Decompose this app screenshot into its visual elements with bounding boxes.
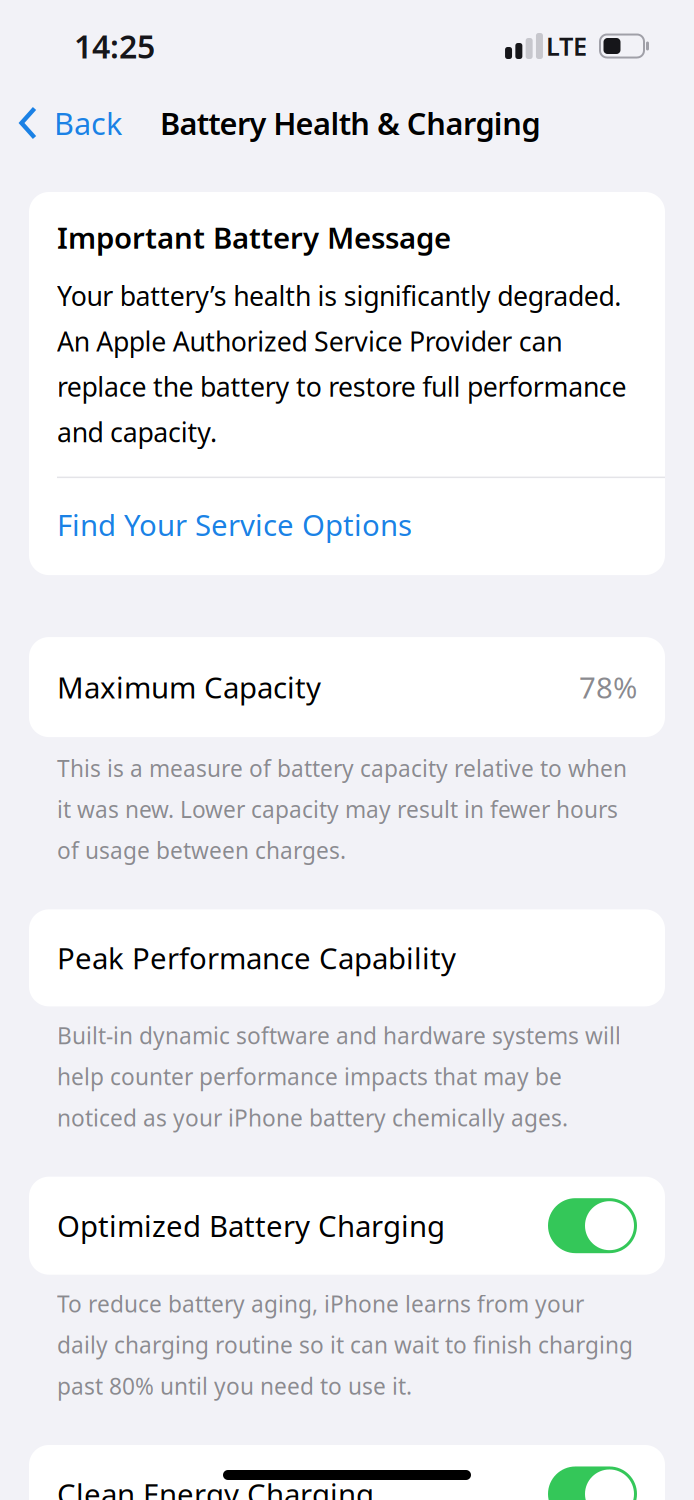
staticText: This is a measure of battery capacity re…: [57, 753, 627, 865]
button[interactable]: Find Your Service Options: [57, 478, 637, 575]
button[interactable]: Back: [0, 88, 132, 158]
staticText: Important Battery Message: [57, 218, 451, 257]
staticText: 78%: [579, 668, 637, 707]
staticText: Maximum Capacity: [57, 668, 321, 707]
staticText: Back: [54, 103, 122, 143]
staticText: Peak Performance Capability: [57, 938, 456, 977]
staticText: Your battery’s health is significantly d…: [57, 278, 626, 450]
button[interactable]: Optimized Battery Charging: [29, 1177, 665, 1275]
staticText: Built-in dynamic software and hardware s…: [57, 1020, 621, 1133]
button[interactable]: Maximum Capacity: [29, 637, 665, 737]
staticText: LTE: [546, 29, 587, 63]
staticText: Battery Health & Charging: [160, 103, 541, 143]
staticText: Optimized Battery Charging: [57, 1206, 445, 1245]
staticText: 14:25: [74, 25, 155, 67]
button[interactable]: Peak Performance Capability: [29, 909, 665, 1006]
button[interactable]: Clean Energy Charging: [29, 1445, 665, 1500]
staticText: Find Your Service Options: [57, 505, 412, 544]
staticText: Clean Energy Charging: [57, 1474, 374, 1500]
staticText: To reduce battery aging, iPhone learns f…: [57, 1289, 633, 1401]
